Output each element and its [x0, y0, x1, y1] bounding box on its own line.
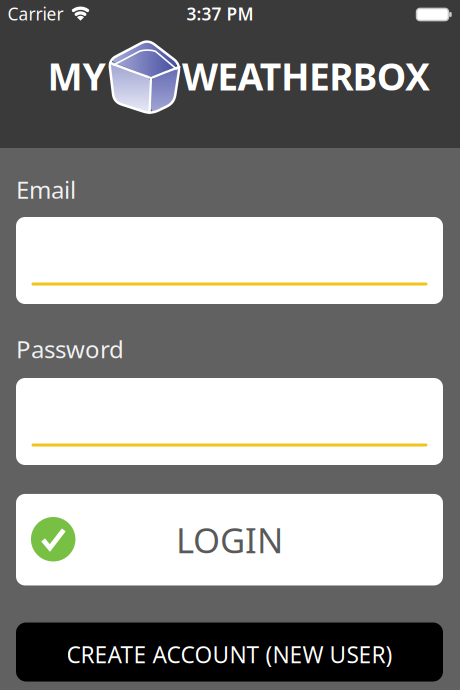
staticText: Carrier [7, 2, 63, 25]
staticText: MY [47, 51, 105, 101]
button[interactable]: Email [16, 217, 443, 304]
staticText: 3:37 PM [186, 2, 253, 25]
button[interactable]: LOGIN [16, 494, 443, 585]
staticText: CREATE ACCOUNT (NEW USER) [66, 639, 392, 669]
button[interactable]: CREATE ACCOUNT (NEW USER) [16, 622, 443, 681]
button[interactable]: Password [16, 378, 443, 465]
staticText: LOGIN [176, 517, 283, 563]
staticText: WEATHERBOX [182, 51, 430, 101]
staticText: Password [16, 333, 124, 365]
staticText: Email [16, 174, 76, 205]
